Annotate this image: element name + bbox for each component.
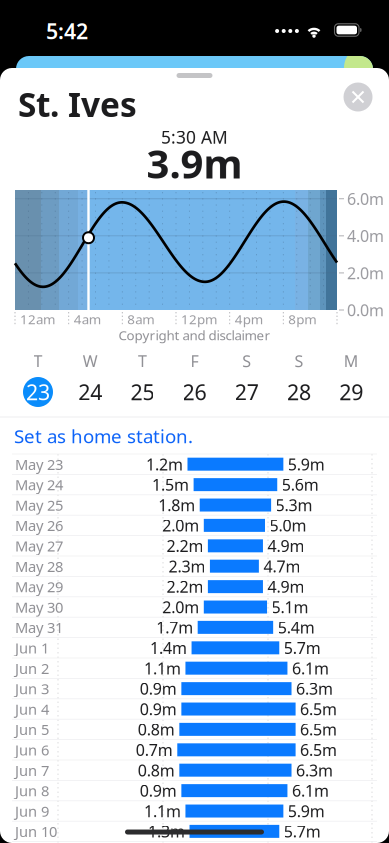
staticText: Jun 10: [15, 822, 57, 841]
staticText: May 28: [15, 556, 63, 576]
button[interactable]: S: [273, 352, 325, 402]
staticText: S: [242, 350, 251, 372]
staticText: 1.7m: [156, 617, 193, 638]
staticText: 12am: [20, 310, 55, 328]
staticText: 6.5m: [300, 698, 337, 720]
staticText: 5:42: [46, 17, 88, 45]
staticText: 0.7m: [136, 739, 173, 760]
staticText: 5.7m: [284, 637, 321, 658]
staticText: Copyright and disclaimer: [118, 326, 270, 344]
staticText: May 30: [15, 597, 63, 617]
staticText: 4.0m: [347, 225, 384, 246]
staticText: 6.5m: [300, 719, 337, 740]
staticText: 2.2m: [166, 576, 203, 597]
staticText: W: [83, 350, 98, 372]
staticText: May 31: [15, 618, 63, 637]
staticText: 1.1m: [144, 658, 181, 679]
staticText: 5.4m: [278, 617, 315, 638]
staticText: 26: [183, 378, 207, 406]
staticText: Jun 2: [15, 658, 49, 678]
staticText: May 24: [15, 475, 63, 494]
staticText: 2.0m: [162, 596, 199, 618]
staticText: 1.1m: [144, 800, 181, 822]
staticText: 2.0m: [347, 262, 384, 283]
staticText: 8pm: [288, 310, 316, 328]
staticText: 24: [78, 378, 102, 406]
staticText: 5.6m: [282, 474, 319, 495]
staticText: 4am: [74, 310, 101, 328]
staticText: 1.4m: [150, 637, 187, 658]
staticText: 0.8m: [138, 719, 175, 740]
staticText: 12pm: [181, 310, 217, 328]
staticText: 25: [130, 378, 154, 406]
staticText: 5.9m: [288, 800, 325, 822]
button[interactable]: Close: [341, 80, 375, 114]
staticText: Set as home station.: [14, 424, 193, 448]
staticText: Jun 8: [15, 781, 49, 800]
button[interactable]: Set as home station.: [0, 421, 389, 451]
staticText: May 27: [15, 536, 63, 556]
staticText: 0.0m: [347, 299, 384, 321]
staticText: 0.9m: [140, 678, 177, 699]
staticText: 6.1m: [292, 780, 329, 801]
staticText: Jun 9: [15, 801, 49, 821]
staticText: 5:30 AM: [161, 125, 228, 148]
staticText: M: [344, 350, 359, 372]
staticText: 28: [287, 378, 311, 406]
button[interactable]: W: [64, 352, 116, 402]
staticText: T: [33, 350, 42, 372]
staticText: May 26: [15, 516, 63, 535]
staticText: May 29: [15, 577, 63, 596]
staticText: 3.9m: [146, 136, 242, 189]
staticText: F: [191, 350, 199, 372]
staticText: 5.0m: [269, 515, 306, 536]
staticText: 1.2m: [146, 454, 183, 475]
staticText: 2.2m: [166, 535, 203, 556]
staticText: 2.0m: [162, 515, 199, 536]
button[interactable]: S: [221, 352, 273, 402]
staticText: 8am: [127, 310, 154, 328]
staticText: 4pm: [235, 310, 263, 328]
staticText: 6.1m: [292, 658, 329, 679]
button[interactable]: F: [169, 352, 221, 402]
staticText: May 25: [15, 495, 63, 515]
staticText: 27: [235, 378, 259, 406]
button[interactable]: T: [12, 352, 64, 402]
button[interactable]: T: [116, 352, 168, 402]
staticText: S: [294, 350, 303, 372]
staticText: 1.5m: [152, 474, 189, 495]
staticText: Jun 1: [15, 638, 49, 658]
staticText: 1.3m: [148, 821, 185, 842]
staticText: 6.0m: [347, 188, 384, 209]
staticText: 6.5m: [300, 739, 337, 760]
staticText: St. Ives: [18, 82, 137, 126]
staticText: 29: [339, 378, 363, 406]
staticText: 4.9m: [267, 535, 304, 556]
button[interactable]: M: [325, 352, 377, 402]
staticText: May 23: [15, 454, 63, 474]
staticText: 0.9m: [140, 780, 177, 801]
staticText: 6.3m: [296, 760, 333, 781]
staticText: 0.8m: [138, 760, 175, 781]
staticText: T: [138, 350, 147, 372]
staticText: 23: [26, 378, 50, 406]
staticText: 6.3m: [296, 678, 333, 699]
staticText: Jun 4: [15, 699, 49, 719]
staticText: 2.3m: [168, 556, 205, 577]
staticText: 0.9m: [140, 698, 177, 720]
staticText: 5.3m: [276, 494, 313, 516]
staticText: Jun 3: [15, 679, 49, 698]
staticText: Jun 5: [15, 720, 49, 739]
staticText: 4.7m: [263, 556, 300, 577]
staticText: 5.1m: [271, 596, 308, 618]
staticText: 5.7m: [284, 821, 321, 842]
staticText: Jun 7: [15, 760, 49, 780]
staticText: Jun 6: [15, 740, 49, 760]
staticText: 1.8m: [158, 494, 195, 516]
staticText: 5.9m: [288, 454, 325, 475]
staticText: 4.9m: [267, 576, 304, 597]
